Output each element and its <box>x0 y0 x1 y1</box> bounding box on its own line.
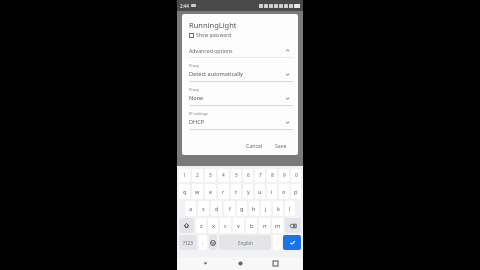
staticText: v <box>237 222 240 230</box>
staticText: 3 <box>209 172 212 179</box>
staticText: Advanced options <box>189 47 233 54</box>
button[interactable]: 3 <box>205 169 216 182</box>
button[interactable]: 5 <box>231 169 241 182</box>
staticText: DHCP <box>189 118 205 126</box>
button[interactable]: 0 <box>291 169 301 182</box>
button[interactable]: j <box>261 201 271 216</box>
button[interactable]: , <box>199 235 207 250</box>
button[interactable]: y <box>243 184 253 199</box>
button[interactable]: Cancel <box>242 140 267 151</box>
button[interactable]: Recents <box>268 257 282 270</box>
staticText: ?123 <box>183 240 193 246</box>
button[interactable]: d <box>211 201 222 216</box>
staticText: g <box>240 205 244 213</box>
button[interactable]: w <box>192 184 203 199</box>
button[interactable]: t <box>231 184 241 199</box>
button[interactable]: f <box>224 201 235 216</box>
button[interactable]: 9 <box>279 169 289 182</box>
staticText: Proxy <box>189 87 199 92</box>
button[interactable]: z <box>196 218 206 233</box>
button[interactable]: k <box>273 201 283 216</box>
staticText: t <box>235 188 238 196</box>
button[interactable]: 6 <box>243 169 253 182</box>
button[interactable]: p <box>291 184 301 199</box>
staticText: . <box>276 239 278 246</box>
staticText: , <box>202 239 204 246</box>
button[interactable]: g <box>237 201 247 216</box>
staticText: x <box>212 222 215 230</box>
staticText: j <box>265 205 267 213</box>
button[interactable]: a <box>185 201 196 216</box>
button[interactable]: English <box>219 235 271 250</box>
button[interactable]: i <box>267 184 277 199</box>
staticText: d <box>215 205 219 213</box>
button[interactable]: Shift <box>179 218 194 233</box>
button[interactable]: e <box>205 184 216 199</box>
button[interactable]: u <box>255 184 265 199</box>
staticText: s <box>202 205 205 213</box>
staticText: a <box>189 205 193 213</box>
staticText: w <box>195 188 200 196</box>
staticText: 8 <box>271 172 274 179</box>
staticText: 1 <box>183 172 186 179</box>
button[interactable]: l <box>285 201 295 216</box>
button[interactable]: x <box>208 218 218 233</box>
button[interactable]: 8 <box>267 169 277 182</box>
button[interactable]: Advanced options <box>189 47 293 54</box>
staticText: u <box>258 188 262 196</box>
staticText: 9 <box>283 172 286 179</box>
staticText: Detect automatically <box>189 70 243 78</box>
button[interactable]: 7 <box>255 169 265 182</box>
button[interactable]: v <box>233 218 244 233</box>
button[interactable]: q <box>179 184 190 199</box>
staticText: IP settings <box>189 111 208 116</box>
button[interactable]: m <box>272 218 283 233</box>
button[interactable]: 1 <box>179 169 190 182</box>
staticText: None <box>189 94 204 102</box>
button[interactable]: Show password <box>189 32 232 39</box>
button[interactable]: Enter <box>283 235 301 250</box>
button[interactable]: r <box>218 184 229 199</box>
button[interactable]: Emoji <box>209 235 217 250</box>
button[interactable]: IP settings <box>189 106 293 130</box>
button[interactable]: o <box>279 184 289 199</box>
button[interactable]: . <box>273 235 281 250</box>
button[interactable]: 2 <box>192 169 203 182</box>
button[interactable]: b <box>246 218 257 233</box>
staticText: 5 <box>235 172 238 179</box>
button[interactable]: c <box>220 218 231 233</box>
staticText: Save <box>275 142 287 149</box>
staticText: Cancel <box>246 142 263 149</box>
staticText: q <box>183 188 187 196</box>
button[interactable]: Save <box>271 140 291 151</box>
staticText: Proxy <box>189 63 199 68</box>
staticText: p <box>294 188 298 196</box>
staticText: 4 <box>222 172 225 179</box>
staticText: 0 <box>295 172 298 179</box>
staticText: 2 <box>196 172 199 179</box>
button[interactable]: n <box>259 218 270 233</box>
button[interactable]: s <box>198 201 209 216</box>
button[interactable]: h <box>249 201 259 216</box>
staticText: o <box>282 188 286 196</box>
staticText: Show password <box>196 32 232 39</box>
staticText: m <box>275 222 281 230</box>
button[interactable]: ?123 <box>179 235 197 250</box>
staticText: 2:44 <box>180 3 189 9</box>
staticText: c <box>224 222 227 230</box>
staticText: k <box>277 205 280 213</box>
button[interactable]: Proxy <box>189 82 293 106</box>
staticText: 6 <box>247 172 250 179</box>
button[interactable]: Proxy <box>189 58 293 82</box>
staticText: r <box>222 188 225 196</box>
staticText: b <box>250 222 254 230</box>
button[interactable]: Home <box>233 257 247 270</box>
staticText: English <box>238 240 253 246</box>
staticText: f <box>229 205 231 213</box>
staticText: z <box>200 222 203 230</box>
staticText: RunningLight <box>189 20 237 30</box>
staticText: 7 <box>259 172 262 179</box>
button[interactable]: Backspace <box>285 218 301 233</box>
button[interactable]: Back <box>198 257 212 270</box>
button[interactable]: 4 <box>218 169 229 182</box>
